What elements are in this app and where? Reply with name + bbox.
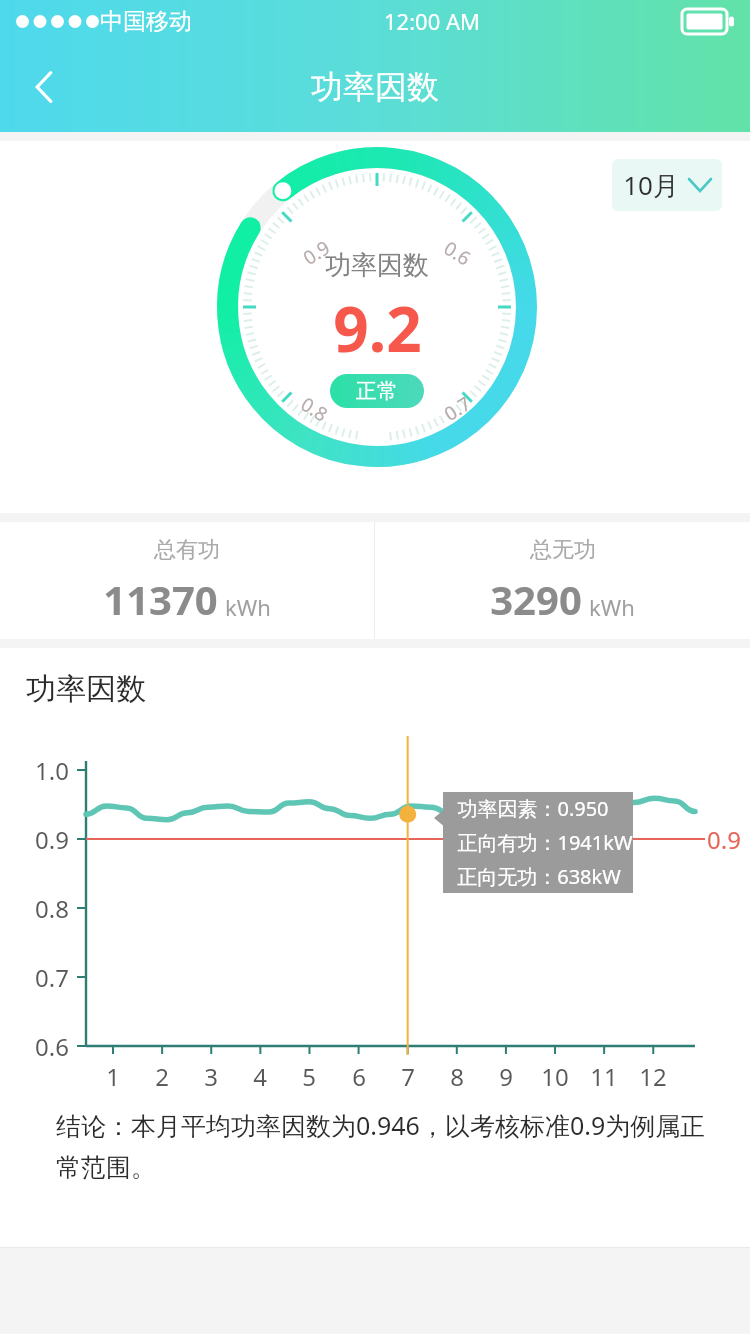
staticText: 6: [352, 1060, 366, 1093]
staticText: 正向无功：638kW: [457, 863, 621, 890]
button[interactable]: 总无功: [375, 522, 750, 639]
staticText: 0.8: [296, 391, 333, 427]
staticText: 0.6: [35, 1030, 69, 1063]
staticText: 0.9: [298, 235, 335, 271]
staticText: 11370: [103, 572, 218, 626]
button[interactable]: 正常: [330, 374, 424, 408]
staticText: 功率因数: [311, 67, 439, 107]
staticText: 4: [253, 1060, 267, 1093]
staticText: 8: [450, 1060, 464, 1093]
staticText: 10月: [623, 167, 679, 203]
staticText: 功率因数: [26, 670, 146, 708]
staticText: 11: [590, 1060, 618, 1093]
button[interactable]: 10月: [612, 159, 722, 211]
staticText: 1: [106, 1060, 120, 1093]
staticText: 0.7: [439, 391, 476, 427]
staticText: 12: [639, 1060, 667, 1093]
staticText: 中国移动: [100, 7, 192, 36]
staticText: 总无功: [530, 536, 596, 564]
staticText: 0.9: [35, 823, 69, 856]
button[interactable]: Back: [14, 57, 74, 117]
staticText: 9.2: [333, 286, 422, 370]
staticText: 1.0: [35, 754, 69, 787]
staticText: 0.6: [439, 235, 476, 271]
staticText: 功率因数: [325, 249, 429, 282]
staticText: kWh: [225, 592, 271, 622]
staticText: 12:00 AM: [384, 6, 480, 36]
staticText: 正向有功：1941kW: [457, 829, 633, 856]
staticText: 0.9: [707, 823, 741, 856]
staticText: kWh: [589, 592, 635, 622]
staticText: 0.7: [35, 961, 69, 994]
button[interactable]: 总有功: [0, 522, 374, 639]
staticText: 总有功: [154, 536, 220, 564]
staticText: 结论：本月平均功率因数为0.946，以考核标准0.9为例属正常范围。: [56, 1108, 716, 1184]
staticText: 9: [499, 1060, 513, 1093]
staticText: 5: [302, 1060, 316, 1093]
staticText: 7: [401, 1060, 415, 1093]
staticText: 正常: [356, 378, 398, 404]
staticText: 2: [155, 1060, 169, 1093]
staticText: 功率因素：0.950: [457, 795, 609, 822]
staticText: 3290: [490, 572, 582, 626]
staticText: 3: [204, 1060, 218, 1093]
staticText: 10: [541, 1060, 569, 1093]
staticText: 0.8: [35, 892, 69, 925]
